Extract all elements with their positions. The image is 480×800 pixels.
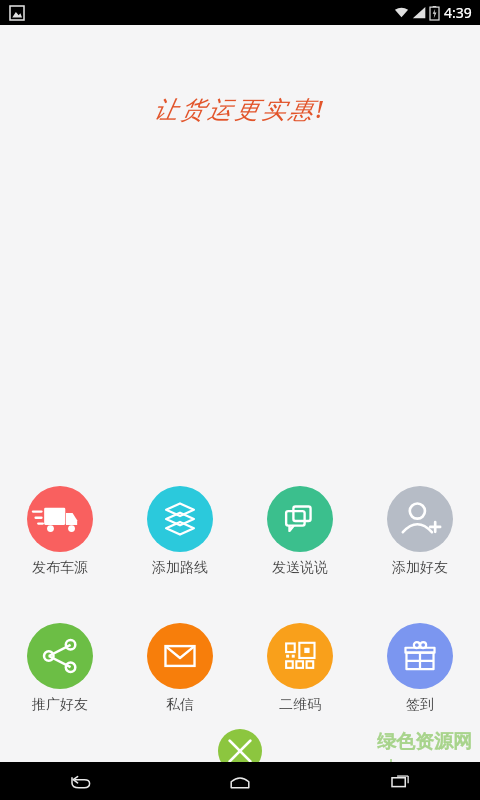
button[interactable]: Home (160, 762, 320, 800)
staticText: 4:39 (444, 3, 472, 22)
button[interactable]: 发布车源 (0, 486, 120, 577)
button[interactable]: 私信 (120, 623, 240, 714)
button[interactable]: 添加路线 (120, 486, 240, 577)
staticText: 添加路线 (152, 559, 208, 577)
staticText: 绿色资源网 (377, 730, 472, 754)
button[interactable]: 签到 (360, 623, 480, 714)
staticText: 发布车源 (32, 559, 88, 577)
button[interactable]: 添加好友 (360, 486, 480, 577)
staticText: 添加好友 (392, 559, 448, 577)
button[interactable]: 发送说说 (240, 486, 360, 577)
staticText: 让货运更实惠! (153, 92, 327, 125)
staticText: www.downcc.com (345, 754, 472, 774)
staticText: 二维码 (279, 696, 321, 714)
staticText: 发送说说 (272, 559, 328, 577)
button[interactable]: 推广好友 (0, 623, 120, 714)
staticText: 私信 (166, 696, 194, 714)
button[interactable]: Close (218, 729, 262, 773)
staticText: 推广好友 (32, 696, 88, 714)
button[interactable]: Back (0, 762, 160, 800)
staticText: 签到 (406, 696, 434, 714)
button[interactable]: 二维码 (240, 623, 360, 714)
button[interactable]: Recents (320, 762, 480, 800)
